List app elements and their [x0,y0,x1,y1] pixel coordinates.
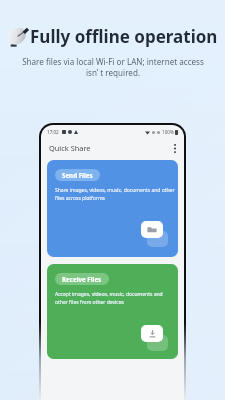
button[interactable]: Send Files [47,160,178,257]
staticText: Send Files [62,171,93,179]
staticText: Quick Share [49,143,91,153]
staticText: Accept images, videos, music, documents … [55,291,163,306]
staticText: Fully offline operation [30,25,218,48]
staticText: 17:02 [47,129,59,135]
staticText: Share images, videos, music, documents a… [55,187,175,202]
button[interactable]: Receive Files [47,264,178,359]
staticText: Share files via local Wi-Fi or LAN; inte… [22,56,204,78]
staticText: 100% [162,129,174,135]
staticText: Receive Files [62,275,102,283]
button[interactable]: More options [169,142,181,154]
